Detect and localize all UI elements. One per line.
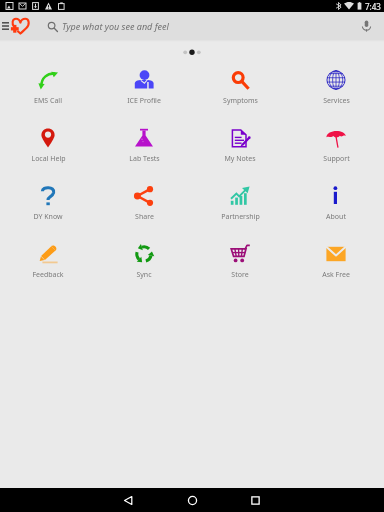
staticText: ICE Profile [127,96,161,106]
button[interactable]: Back [108,488,148,512]
staticText: DY Know [33,212,63,222]
button[interactable]: Symptoms [192,56,288,114]
staticText: Store [231,270,249,280]
button[interactable]: Home [172,488,212,512]
staticText: Symptoms [223,96,258,106]
button[interactable]: Ask Free [288,230,384,288]
button[interactable]: Support [288,114,384,172]
button[interactable]: DY Know [0,172,96,230]
staticText: Lab Tests [129,154,160,164]
staticText: Type what you see and feel [62,20,169,32]
staticText: Share [135,212,154,222]
button[interactable]: Feedback [0,230,96,288]
button[interactable]: Sync [96,230,192,288]
staticText: EMS Call [34,96,62,106]
button[interactable]: EMS Call [0,56,96,114]
staticText: Feedback [32,270,64,280]
button[interactable]: Partnership [192,172,288,230]
button[interactable]: Lab Tests [96,114,192,172]
staticText: 7:43 [365,1,381,12]
staticText: About [326,212,346,222]
staticText: Services [323,96,350,106]
staticText: My Notes [224,154,256,164]
button[interactable]: Open navigation menu [0,12,30,40]
staticText: Sync [136,270,152,280]
staticText: Partnership [221,212,260,222]
button[interactable]: Share [96,172,192,230]
staticText: Local Help [31,154,66,164]
staticText: Ask Free [322,270,350,280]
button[interactable]: Recent apps [235,488,275,512]
button[interactable]: Voice search [353,13,379,39]
button[interactable]: Store [192,230,288,288]
button[interactable]: About [288,172,384,230]
button[interactable]: My Notes [192,114,288,172]
button[interactable]: Services [288,56,384,114]
button[interactable]: ICE Profile [96,56,192,114]
staticText: Support [323,154,350,164]
button[interactable]: Local Help [0,114,96,172]
